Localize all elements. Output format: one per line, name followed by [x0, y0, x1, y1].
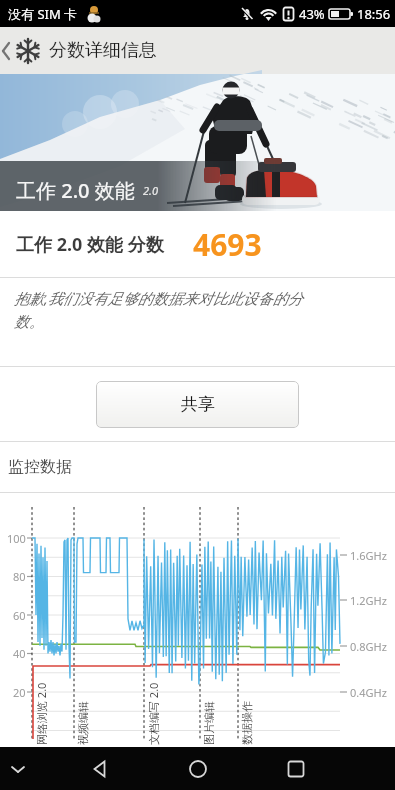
staticText: 18:56 — [357, 5, 391, 23]
button[interactable] — [247, 747, 345, 790]
staticText: 抱歉,我们没有足够的数据来对比此设备的分 数。 — [14, 288, 303, 332]
staticText: 2.0 — [143, 183, 158, 198]
button[interactable] — [51, 747, 149, 790]
staticText: 工作 2.0 效能 分数 — [16, 232, 164, 257]
button[interactable]: 分数详细信息 — [0, 27, 395, 74]
staticText: 共享 — [181, 394, 215, 415]
staticText: 4693 — [193, 224, 262, 265]
button[interactable]: 共享 — [96, 381, 299, 428]
staticText: 没有 SIM 卡 — [8, 5, 78, 23]
staticText: 工作 2.0 效能 — [16, 177, 135, 204]
staticText: 监控数据 — [8, 457, 72, 477]
staticText: 43% — [299, 5, 325, 23]
staticText: 分数详细信息 — [49, 39, 157, 62]
button[interactable] — [149, 747, 247, 790]
